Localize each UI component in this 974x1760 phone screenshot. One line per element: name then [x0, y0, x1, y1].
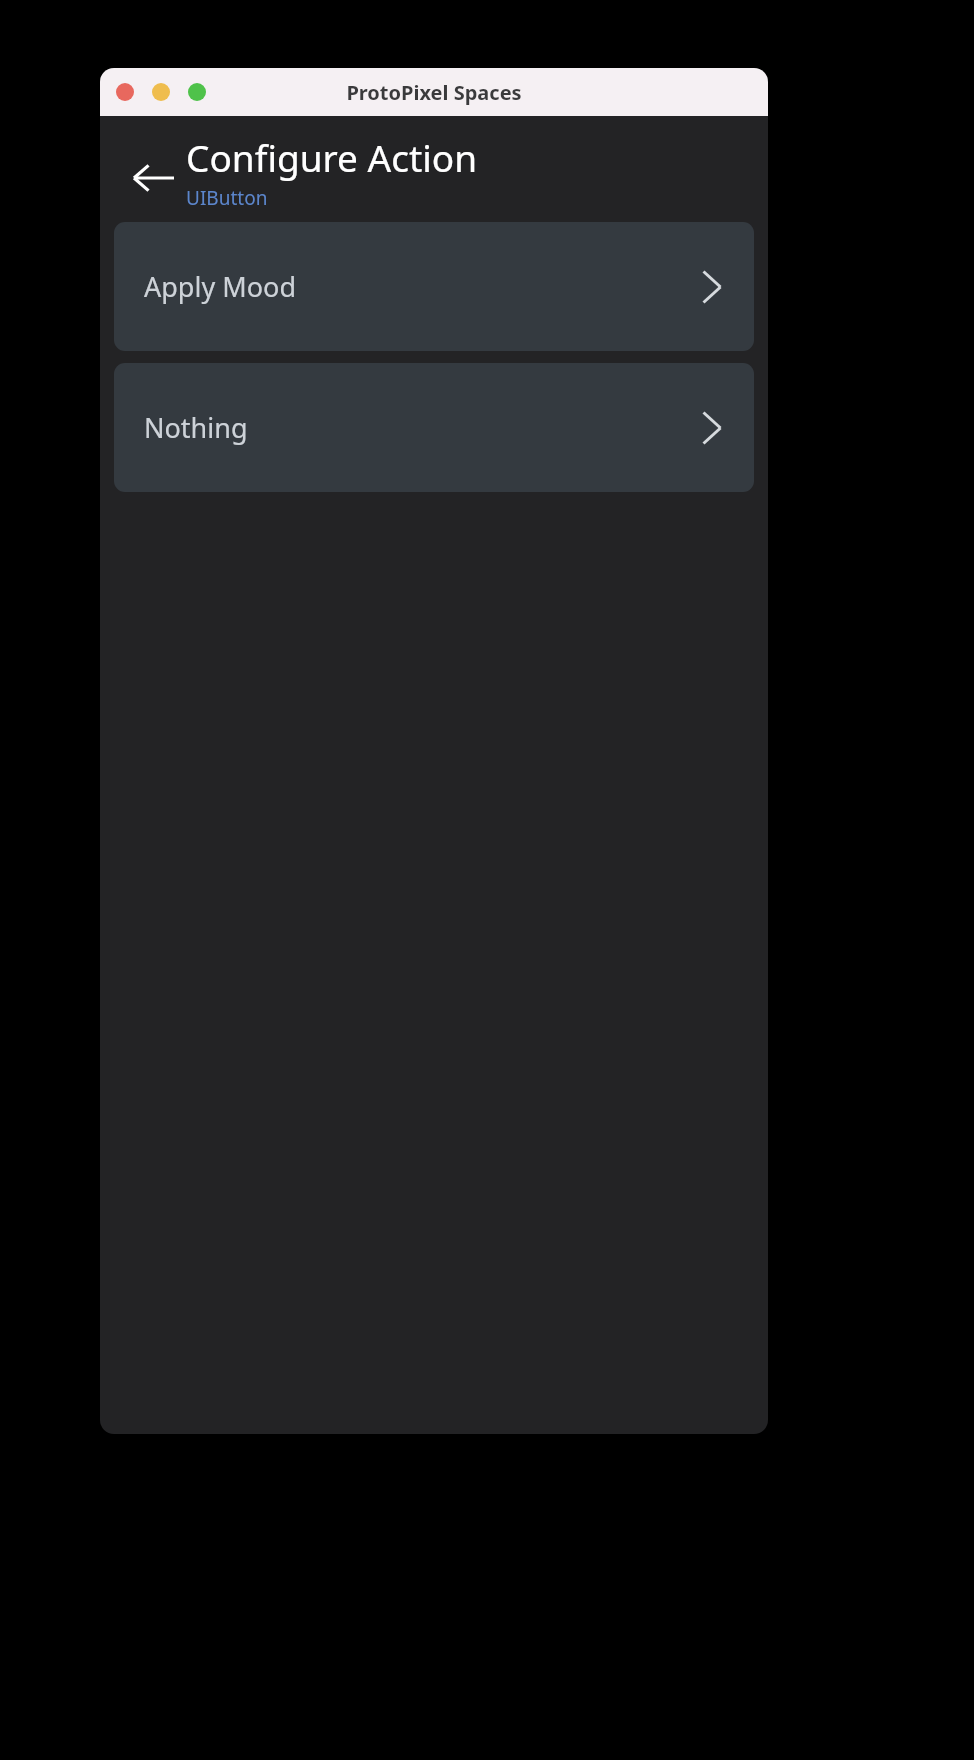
button[interactable]: Nothing: [114, 363, 754, 492]
button[interactable]: Minimize window: [152, 83, 170, 101]
staticText: Nothing: [144, 409, 248, 446]
button[interactable]: Maximize window: [188, 83, 206, 101]
staticText: ProtoPixel Spaces: [346, 79, 522, 106]
button[interactable]: Back: [126, 150, 182, 206]
button[interactable]: Apply Mood: [114, 222, 754, 351]
staticText: Apply Mood: [144, 268, 296, 305]
staticText: Configure Action: [186, 132, 478, 182]
staticText: UIButton: [186, 185, 268, 211]
button[interactable]: Close window: [116, 83, 134, 101]
